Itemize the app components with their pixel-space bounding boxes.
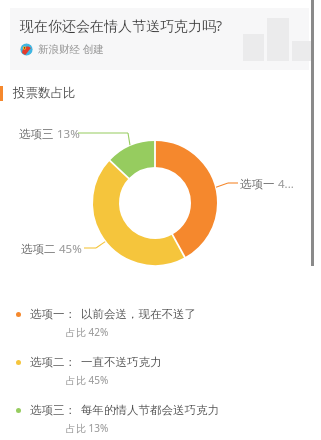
staticText: 选项三 bbox=[19, 127, 54, 141]
staticText: 4... bbox=[278, 176, 294, 192]
staticText: 选项三： bbox=[30, 403, 76, 417]
staticText: 现在你还会在情人节送巧克力吗? bbox=[20, 16, 223, 35]
staticText: 一直不送巧克力 bbox=[81, 355, 162, 369]
staticText: 占比 42% bbox=[66, 325, 109, 339]
staticText: 新浪财经 创建 bbox=[38, 42, 104, 56]
other: 新浪财经 avatar bbox=[20, 43, 33, 56]
button[interactable]: 选项三： bbox=[16, 403, 309, 435]
staticText: 13% bbox=[57, 126, 80, 142]
staticText: 以前会送，现在不送了 bbox=[81, 307, 196, 321]
staticText: 每年的情人节都会送巧克力 bbox=[81, 403, 219, 417]
button[interactable]: 选项二： bbox=[16, 355, 309, 387]
staticText: 选项二 bbox=[21, 242, 56, 256]
staticText: 45% bbox=[59, 241, 82, 257]
staticText: 投票数占比 bbox=[13, 85, 76, 101]
staticText: 选项一： bbox=[30, 307, 76, 321]
staticText: 选项一 bbox=[240, 177, 275, 191]
button[interactable]: 选项一： bbox=[16, 307, 309, 339]
staticText: 占比 45% bbox=[66, 373, 109, 387]
staticText: 占比 13% bbox=[66, 421, 109, 435]
button[interactable]: 现在你还会在情人节送巧克力吗? bbox=[10, 8, 309, 70]
staticText: 选项二： bbox=[30, 355, 76, 369]
